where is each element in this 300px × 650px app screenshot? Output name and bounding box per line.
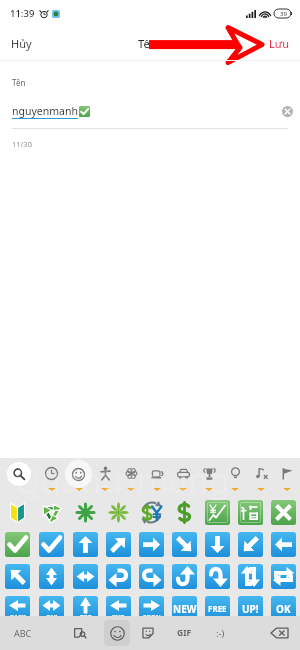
staticText: ABC [14,627,32,639]
button[interactable]: Emoji 21 [102,564,135,589]
button[interactable]: Emoji 6 [201,500,234,525]
button[interactable]: Activities [196,458,222,492]
button[interactable]: Emoji 30 [102,596,135,616]
staticText: NEW [173,602,197,616]
button[interactable]: Emoji 29 [68,596,102,616]
button[interactable]: Emoji 9 [0,532,34,557]
button[interactable]: Backspace [266,620,292,646]
staticText: UP! [242,602,259,616]
staticText: ON! [46,613,58,616]
button[interactable]: Objects [222,458,248,492]
button[interactable]: :-) [206,616,234,650]
staticText: GIF [177,627,192,639]
button[interactable]: Emoji 2 [68,500,102,525]
button[interactable]: Emoji [104,620,130,646]
button[interactable]: Search emoji [0,458,38,492]
button[interactable]: People [92,458,118,492]
staticText: Lưu [269,36,289,51]
button[interactable]: Emoji 15 [201,532,234,557]
button[interactable]: Emoji 27 [0,596,34,616]
button[interactable]: Emoji 23 [168,564,201,589]
staticText: OK [276,602,291,616]
staticText: Quantrimang [14,457,230,503]
button[interactable]: Emoji 22 [135,564,168,589]
button[interactable]: Emoji 5 [168,500,201,525]
staticText: :-) [216,627,225,640]
button[interactable]: Emoji 10 [34,532,68,557]
button[interactable]: ABC [6,616,40,650]
button[interactable]: Emoji 3 [102,500,135,525]
button[interactable]: Emoji 34 [234,596,267,616]
button[interactable]: Emoji 24 [201,564,234,589]
staticText: FREE [208,603,227,614]
staticText: 11/30 [12,139,32,149]
staticText: BACK [10,613,26,616]
button[interactable]: Emoji 17 [267,532,300,557]
staticText: TOP [80,613,92,616]
button[interactable]: Lưu [258,30,300,57]
staticText: SOON [143,613,161,616]
staticText: nguyenmanh [12,104,78,118]
button[interactable]: Food and drink [144,458,170,492]
button[interactable]: Emoji 14 [168,532,201,557]
button[interactable]: Emoji 4 [135,500,168,525]
button[interactable]: Symbols [248,458,274,492]
staticText: Tên [138,36,157,51]
button[interactable]: Emoji 7 [234,500,267,525]
button[interactable]: Emoji 19 [34,564,68,589]
button[interactable]: Emoji 31 [135,596,168,616]
button[interactable]: Smileys [65,458,92,492]
button[interactable]: Emoji 35 [267,596,300,616]
button[interactable]: Emoji 25 [234,564,267,589]
staticText: END [112,613,125,616]
button[interactable]: Emoji 20 [68,564,102,589]
button[interactable]: Recent emoji [38,458,65,492]
staticText: 11:39 [10,7,35,20]
staticText: Hủy [11,36,32,51]
button[interactable]: Emoji 32 [168,596,201,616]
button[interactable]: Emoji 1 [34,500,68,525]
button[interactable]: Emoji 13 [135,532,168,557]
button[interactable]: Emoji 12 [102,532,135,557]
button[interactable]: Emoji 8 [267,500,300,525]
button[interactable]: Emoji 26 [267,564,300,589]
button[interactable]: Emoji 16 [234,532,267,557]
staticText: Tên [12,77,26,88]
staticText: 39 [280,10,287,18]
button[interactable]: Stickers [135,620,161,646]
button[interactable]: Travel [170,458,196,492]
button[interactable]: Flags [274,458,300,492]
button[interactable]: Clear text [282,106,293,117]
button[interactable]: Emoji 0 [0,500,34,525]
button[interactable]: Search stickers [67,620,93,646]
button[interactable]: Emoji 11 [68,532,102,557]
button[interactable]: Emoji 18 [0,564,34,589]
button[interactable]: Emoji 28 [34,596,68,616]
button[interactable]: GIF [170,616,198,650]
button[interactable]: Hủy [0,30,43,57]
button[interactable]: Animals and nature [118,458,144,492]
button[interactable]: Emoji 33 [201,596,234,616]
